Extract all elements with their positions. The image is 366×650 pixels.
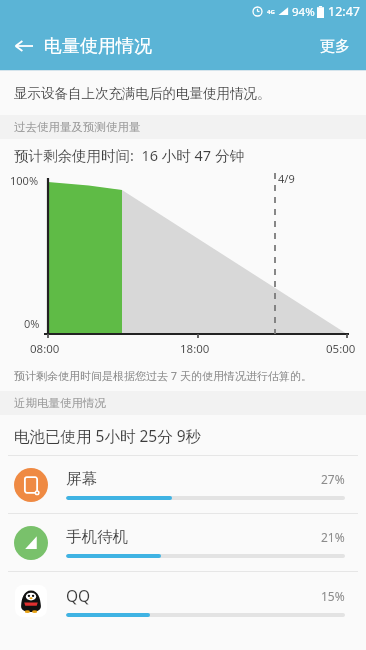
staticText: 100% [10, 173, 39, 188]
staticText: 08:00 [30, 341, 60, 357]
button[interactable]: QQ [0, 572, 366, 629]
button[interactable]: 手机待机 [0, 514, 366, 571]
staticText: 15% [321, 588, 345, 604]
staticText: 0% [24, 316, 40, 331]
staticText: 21% [321, 529, 345, 545]
staticText: 94% [292, 4, 315, 20]
staticText: 12:47 [328, 3, 360, 20]
staticText: 更多 [320, 37, 350, 56]
staticText: QQ [66, 585, 321, 606]
button[interactable]: 更多 [304, 25, 366, 68]
staticText: 屏幕 [66, 469, 321, 489]
staticText: 电池已使用 5小时 25分 9秒 [14, 425, 202, 446]
staticText: 4G [267, 8, 275, 16]
staticText: 预计剩余使用时间是根据您过去 7 天的使用情况进行估算的。 [14, 368, 313, 383]
staticText: 05:00 [326, 341, 356, 357]
staticText: 手机待机 [66, 527, 321, 547]
staticText: 显示设备自上次充满电后的电量使用情况。 [14, 85, 271, 102]
staticText: 电量使用情况 [44, 35, 152, 58]
staticText: 预计剩余使用时间: 16 小时 47 分钟 [14, 145, 244, 165]
staticText: 过去使用量及预测使用量 [14, 120, 141, 134]
staticText: 4/9 [278, 171, 295, 186]
staticText: 27% [321, 471, 345, 487]
button[interactable]: 屏幕 [0, 456, 366, 513]
button[interactable]: Back [0, 22, 48, 70]
staticText: 18:00 [180, 341, 210, 357]
staticText: 近期电量使用情况 [14, 396, 106, 410]
